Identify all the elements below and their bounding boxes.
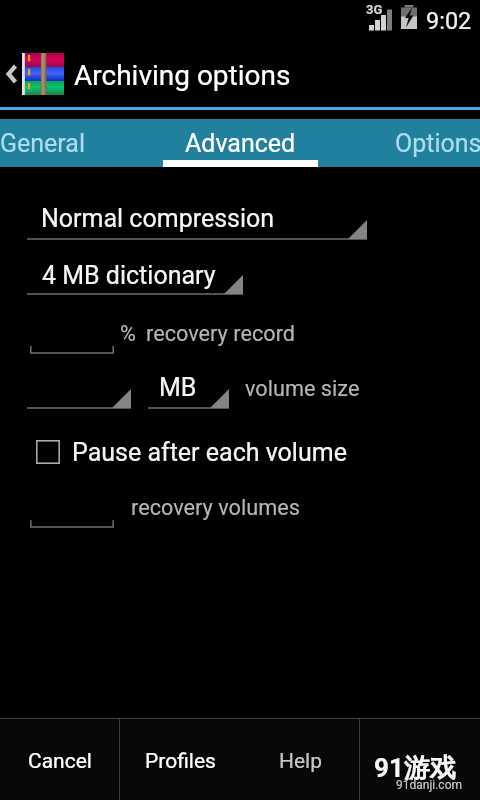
staticText: Options <box>395 129 480 158</box>
button[interactable] <box>240 718 359 800</box>
staticText: 91游戏 <box>374 752 456 785</box>
staticText: Archiving options <box>74 59 291 92</box>
button[interactable]: Advanced <box>160 119 320 167</box>
staticText: MB <box>159 373 197 402</box>
button[interactable]: Volume size unit <box>148 374 229 416</box>
button[interactable]: Options <box>358 119 480 167</box>
staticText: Help <box>279 749 323 774</box>
staticText: Advanced <box>185 129 296 158</box>
staticText: volume size <box>245 376 360 401</box>
staticText: 3G <box>366 2 383 17</box>
button[interactable] <box>0 718 119 800</box>
button[interactable]: Volume size <box>27 374 131 416</box>
staticText: Normal compression <box>41 204 275 233</box>
other: Battery charging <box>401 5 417 30</box>
button[interactable]: Compression method <box>27 205 367 247</box>
staticText: 4 MB dictionary <box>42 261 216 290</box>
button[interactable] <box>120 718 239 800</box>
button[interactable]: Navigate up <box>0 40 480 107</box>
other: Signal strength <box>369 9 393 31</box>
button[interactable]: Number of recovery volumes <box>30 494 114 534</box>
other: Navigate up <box>5 62 18 86</box>
staticText: recovery volumes <box>131 495 300 520</box>
staticText: Cancel <box>28 749 92 774</box>
staticText: recovery record <box>146 321 296 346</box>
staticText: Pause after each volume <box>72 438 347 467</box>
staticText: Profiles <box>145 749 216 774</box>
staticText: 9:02 <box>426 7 472 35</box>
staticText: % <box>120 321 136 346</box>
button[interactable]: Recovery record percent <box>30 320 114 360</box>
staticText: 91danji.com <box>396 778 463 792</box>
staticText: General <box>0 129 86 158</box>
button[interactable] <box>29 432 357 472</box>
button[interactable]: Dictionary size <box>27 260 243 302</box>
button[interactable]: General <box>0 119 123 167</box>
